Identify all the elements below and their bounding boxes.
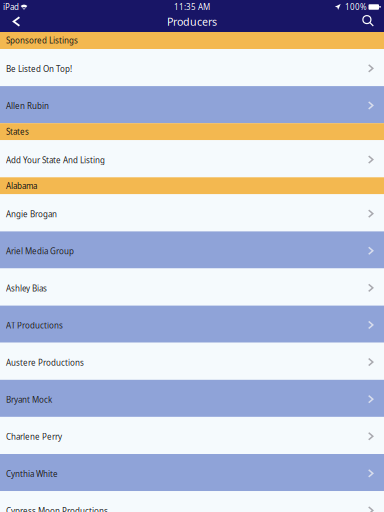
button[interactable]: Ariel Media Group xyxy=(0,231,384,268)
button[interactable]: Allen Rubin xyxy=(0,86,384,123)
button[interactable]: Back xyxy=(0,14,33,32)
staticText: 11:35 AM xyxy=(174,2,210,12)
staticText: AT Productions xyxy=(6,320,63,331)
staticText: Austere Productions xyxy=(6,357,84,368)
button[interactable]: Austere Productions xyxy=(0,343,384,380)
staticText: iPad xyxy=(3,2,19,12)
staticText: 100% xyxy=(345,2,367,12)
button[interactable]: Ashley Bias xyxy=(0,268,384,306)
staticText: Be Listed On Top! xyxy=(6,63,72,74)
staticText: Ashley Bias xyxy=(6,283,47,294)
staticText: Allen Rubin xyxy=(6,101,49,111)
staticText: Ariel Media Group xyxy=(6,246,74,256)
button[interactable]: Search xyxy=(352,14,384,32)
button[interactable]: AT Productions xyxy=(0,306,384,343)
staticText: Cypress Moon Productions xyxy=(6,506,108,512)
staticText: Add Your State And Listing xyxy=(6,155,105,165)
button[interactable]: Be Listed On Top! xyxy=(0,49,384,86)
staticText: Producers xyxy=(167,14,217,29)
button[interactable]: Angie Brogan xyxy=(0,194,384,231)
staticText: Alabama xyxy=(6,180,37,191)
staticText: States xyxy=(6,126,29,137)
button[interactable]: Cypress Moon Productions xyxy=(0,491,384,512)
staticText: Angie Brogan xyxy=(6,209,57,219)
button[interactable]: Add Your State And Listing xyxy=(0,140,384,177)
staticText: Sponsored Listings xyxy=(6,35,78,46)
staticText: Cynthia White xyxy=(6,468,58,479)
button[interactable]: Cynthia White xyxy=(0,454,384,491)
staticText: Charlene Perry xyxy=(6,431,62,442)
staticText: Bryant Mock xyxy=(6,394,52,405)
button[interactable]: Charlene Perry xyxy=(0,417,384,454)
button[interactable]: Bryant Mock xyxy=(0,380,384,417)
